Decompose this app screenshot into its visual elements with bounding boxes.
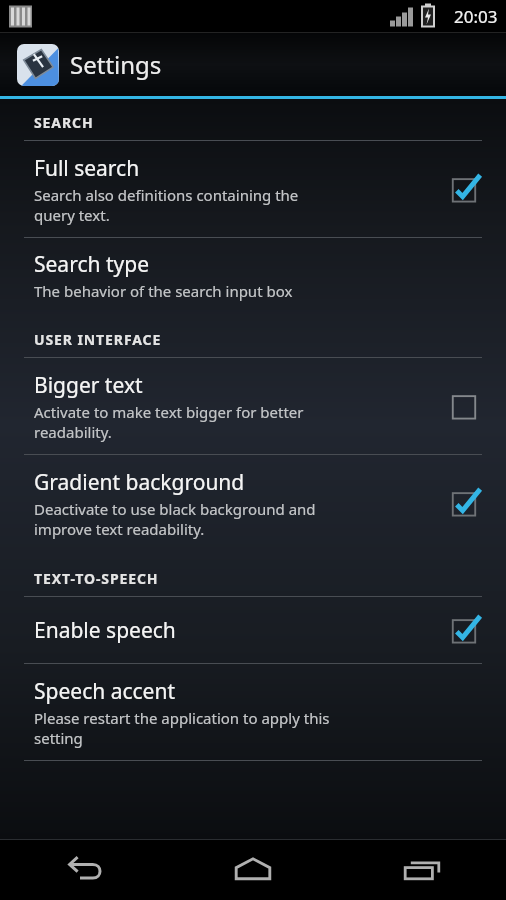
staticText: Speech accent [34, 677, 175, 706]
staticText: Bigger text [34, 371, 143, 400]
staticText: Full search [34, 154, 140, 183]
button[interactable]: Home [168, 839, 337, 900]
button[interactable]: Bigger text checkbox, unchecked [442, 384, 486, 428]
staticText: Please restart the application to apply … [34, 708, 330, 748]
staticText: Search also definitions containing the q… [34, 185, 299, 225]
button[interactable]: Enable speech [0, 597, 506, 663]
button[interactable]: Back [0, 839, 168, 900]
staticText: 20:03 [454, 5, 498, 28]
button[interactable]: Enable speech checkbox, checked [442, 608, 486, 652]
staticText: Deactivate to use black background and i… [34, 499, 316, 539]
staticText: The behavior of the search input box [34, 281, 293, 301]
button[interactable]: Speech accent [0, 664, 506, 760]
staticText: Activate to make text bigger for better … [34, 402, 304, 442]
button[interactable]: Recent apps [337, 839, 506, 900]
button[interactable]: Full search [0, 141, 506, 237]
staticText: Enable speech [34, 616, 176, 645]
button[interactable]: Gradient background checkbox, checked [442, 481, 486, 525]
staticText: Gradient background [34, 468, 245, 497]
staticText: SEARCH [34, 113, 94, 132]
button[interactable]: Bigger text [0, 358, 506, 454]
button[interactable]: Gradient background [0, 455, 506, 551]
staticText: Search type [34, 250, 149, 279]
button[interactable]: Full search checkbox, checked [442, 167, 486, 211]
staticText: TEXT-TO-SPEECH [34, 569, 159, 588]
staticText: USER INTERFACE [34, 330, 162, 349]
button[interactable]: Search type [0, 238, 506, 312]
staticText: Settings [70, 48, 162, 81]
